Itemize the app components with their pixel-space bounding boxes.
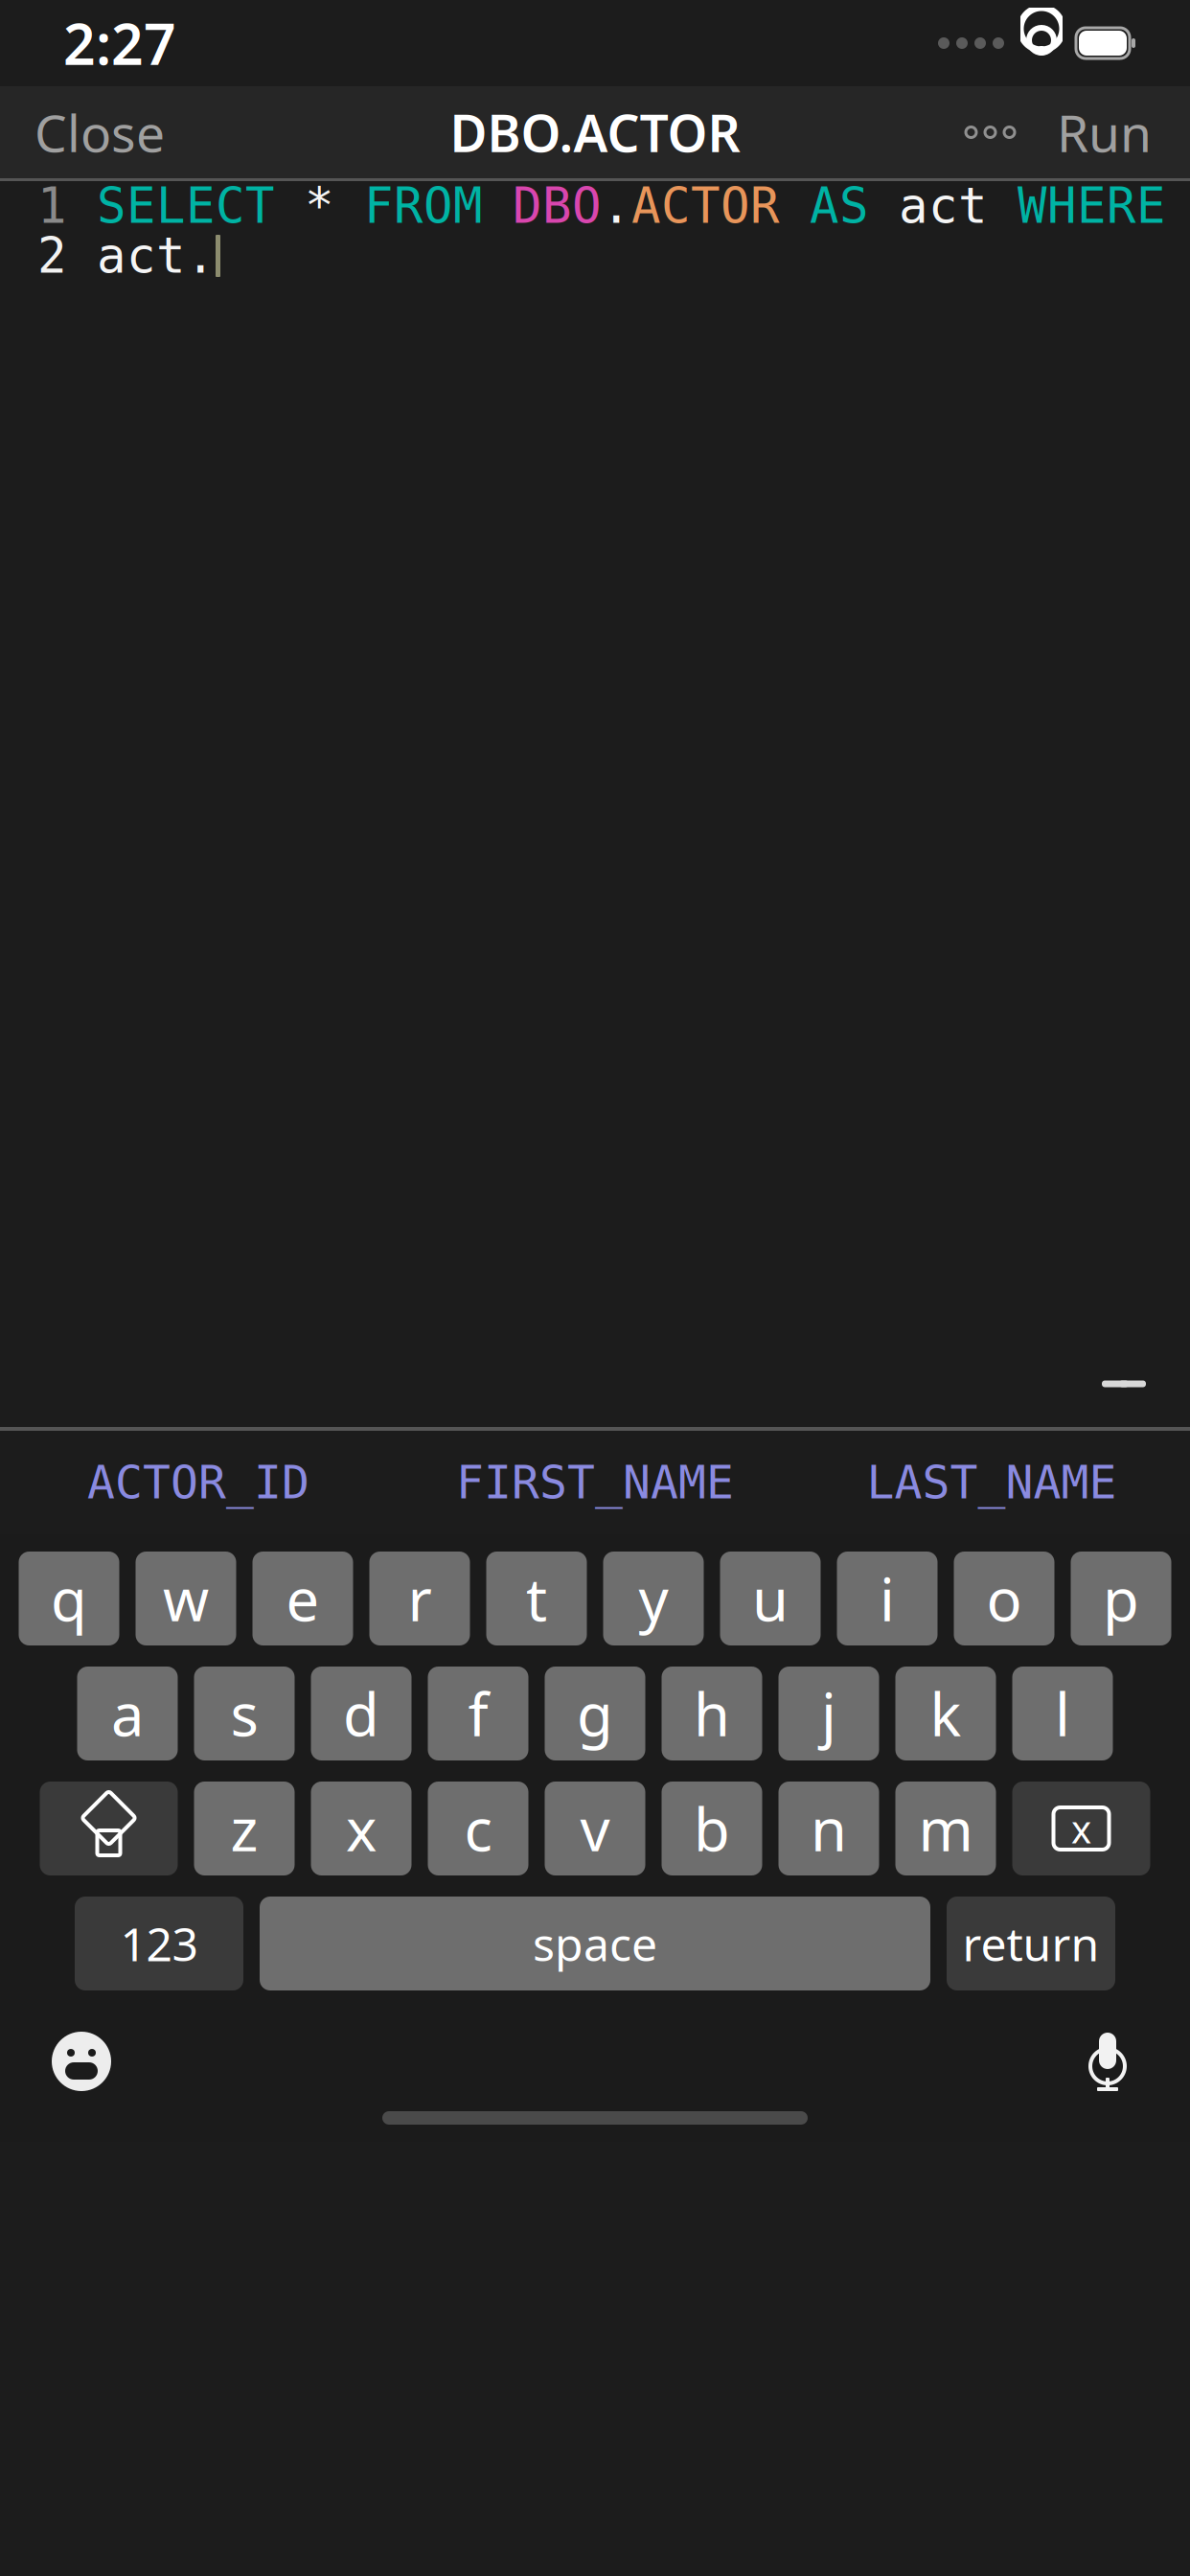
button[interactable]: 123	[75, 1897, 243, 1990]
staticText: ACTOR_ID	[87, 1456, 309, 1509]
button[interactable]: Collapse editor	[1079, 1352, 1169, 1421]
button[interactable]: k	[895, 1667, 996, 1760]
button[interactable]: t	[486, 1552, 587, 1645]
button[interactable]: n	[778, 1782, 879, 1875]
button[interactable]: v	[545, 1782, 645, 1875]
button[interactable]: Close	[17, 85, 182, 180]
staticText: 123	[120, 1913, 198, 1974]
button[interactable]: LAST_NAME	[793, 1428, 1190, 1537]
staticText: c	[464, 1789, 492, 1868]
staticText: q	[51, 1559, 87, 1638]
button[interactable]: Shift	[40, 1782, 178, 1875]
staticText: *	[305, 178, 364, 234]
button[interactable]: FIRST_NAME	[397, 1428, 793, 1537]
staticText: y	[639, 1559, 668, 1638]
staticText: act	[899, 178, 1018, 234]
staticText: m	[918, 1789, 973, 1868]
staticText: s	[230, 1674, 258, 1753]
button[interactable]: x	[311, 1782, 412, 1875]
button[interactable]: q	[19, 1552, 119, 1645]
staticText: a	[111, 1674, 144, 1753]
staticText: WHERE	[1018, 178, 1166, 234]
staticText: Close	[34, 98, 165, 166]
button[interactable]: Dictation	[1067, 2019, 1148, 2104]
button[interactable]: y	[603, 1552, 704, 1645]
button[interactable]: p	[1071, 1552, 1171, 1645]
button[interactable]: b	[662, 1782, 762, 1875]
button[interactable]: Delete	[1012, 1782, 1150, 1875]
staticText: AS	[810, 178, 899, 234]
staticText	[67, 178, 97, 234]
button[interactable]: a	[77, 1667, 178, 1760]
button[interactable]: h	[662, 1667, 762, 1760]
staticText: FIRST_NAME	[456, 1456, 734, 1509]
button[interactable]: More options	[943, 104, 1038, 161]
staticText: o	[986, 1559, 1022, 1638]
staticText: h	[694, 1674, 730, 1753]
staticText: SELECT	[97, 178, 305, 234]
button[interactable]: ACTOR_ID	[0, 1428, 397, 1537]
button[interactable]: r	[369, 1552, 470, 1645]
staticText: 1	[37, 178, 67, 234]
button[interactable]: e	[252, 1552, 353, 1645]
button[interactable]: d	[311, 1667, 412, 1760]
staticText: w	[163, 1559, 209, 1638]
staticText: v	[580, 1789, 610, 1868]
button[interactable]: space	[260, 1897, 930, 1990]
staticText: x	[1071, 1803, 1091, 1854]
staticText: k	[930, 1674, 961, 1753]
staticText: n	[811, 1789, 847, 1868]
button[interactable]: return	[947, 1897, 1115, 1990]
button[interactable]: c	[428, 1782, 528, 1875]
staticText: ACTOR	[631, 178, 810, 234]
staticText: l	[1055, 1674, 1070, 1753]
staticText: d	[343, 1674, 379, 1753]
staticText: r	[408, 1559, 432, 1638]
button[interactable]: u	[720, 1552, 821, 1645]
staticText: u	[752, 1559, 789, 1638]
staticText: Run	[1057, 98, 1152, 166]
staticText: i	[880, 1559, 895, 1638]
staticText: DBO	[513, 178, 602, 234]
staticText: DBO.ACTOR	[450, 98, 740, 166]
button[interactable]: w	[136, 1552, 236, 1645]
staticText: 2:27	[63, 6, 176, 80]
button[interactable]: l	[1012, 1667, 1113, 1760]
staticText: t	[526, 1559, 547, 1638]
staticText: g	[577, 1674, 613, 1753]
staticText: act.	[97, 228, 216, 283]
staticText: 2	[37, 228, 67, 283]
button[interactable]: g	[545, 1667, 645, 1760]
button[interactable]: m	[895, 1782, 996, 1875]
staticText: j	[821, 1674, 836, 1753]
button[interactable]: o	[954, 1552, 1054, 1645]
staticText: p	[1103, 1559, 1139, 1638]
staticText: space	[533, 1913, 657, 1974]
staticText: e	[286, 1559, 320, 1638]
staticText: FROM	[364, 178, 513, 234]
staticText: z	[230, 1789, 258, 1868]
staticText: return	[962, 1913, 1099, 1974]
staticText: b	[694, 1789, 730, 1868]
staticText: .	[602, 178, 631, 234]
button[interactable]: j	[778, 1667, 879, 1760]
button[interactable]: f	[428, 1667, 528, 1760]
button[interactable]: s	[194, 1667, 295, 1760]
staticText: f	[468, 1674, 488, 1753]
button[interactable]: Run	[1038, 85, 1171, 180]
button[interactable]: Emoji keyboard	[38, 2020, 125, 2103]
button[interactable]: i	[837, 1552, 938, 1645]
button[interactable]: z	[194, 1782, 295, 1875]
staticText: LAST_NAME	[867, 1456, 1117, 1509]
staticText: x	[346, 1789, 377, 1868]
